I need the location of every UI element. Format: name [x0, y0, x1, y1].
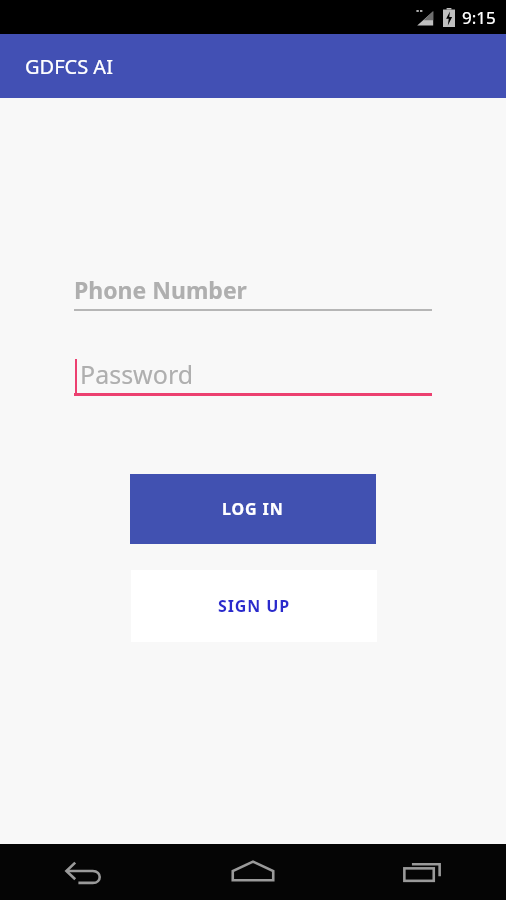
button[interactable]: LOG IN: [130, 474, 376, 544]
button[interactable]: Password: [74, 352, 432, 396]
button[interactable]: Phone Number: [74, 268, 432, 311]
staticText: Password: [80, 357, 194, 391]
button[interactable]: Recent apps: [337, 844, 506, 900]
button[interactable]: SIGN UP: [131, 570, 377, 642]
button[interactable]: Home: [168, 844, 337, 900]
staticText: Phone Number: [74, 274, 247, 305]
staticText: 9:15: [462, 6, 496, 29]
button[interactable]: Back: [0, 844, 168, 900]
staticText: LOG IN: [222, 498, 284, 520]
staticText: SIGN UP: [218, 595, 291, 617]
staticText: GDFCS AI: [25, 53, 113, 80]
